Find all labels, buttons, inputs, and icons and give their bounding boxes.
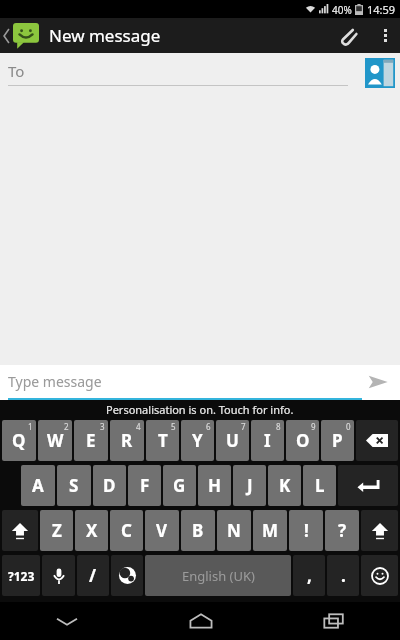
button[interactable]: N [217, 510, 251, 551]
button[interactable]: A [21, 465, 55, 506]
button[interactable]: U [216, 420, 249, 461]
staticText: N [227, 519, 241, 542]
button[interactable]: Home [134, 602, 267, 640]
button[interactable]: V [145, 510, 179, 551]
button[interactable]: To [8, 61, 348, 86]
staticText: 1 [28, 421, 33, 432]
staticText: J [247, 474, 253, 497]
button[interactable]: Z [40, 510, 73, 551]
button[interactable]: W [38, 420, 72, 461]
button[interactable]: Navigate up [0, 18, 43, 53]
button[interactable]: Shift [2, 510, 38, 551]
button[interactable]: D [93, 465, 126, 506]
button[interactable]: Enter [338, 465, 398, 506]
staticText: 8 [276, 421, 281, 432]
staticText: 9 [311, 421, 316, 432]
staticText: ? [338, 519, 347, 542]
button[interactable]: Slash [77, 555, 109, 596]
button[interactable]: More options [370, 18, 400, 53]
staticText: X [86, 519, 98, 542]
button[interactable]: Shift [361, 510, 398, 551]
button[interactable]: C [110, 510, 143, 551]
staticText: B [192, 519, 204, 542]
staticText: Y [192, 429, 203, 452]
button[interactable]: H [198, 465, 231, 506]
staticText: P [332, 429, 343, 452]
staticText: F [140, 474, 150, 497]
staticText: M [262, 519, 279, 542]
staticText: ! [304, 519, 309, 542]
staticText: A [32, 474, 44, 497]
button[interactable]: Voice input [42, 555, 75, 596]
staticText: 3 [100, 421, 105, 432]
button[interactable]: F [128, 465, 161, 506]
staticText: Personalisation is on. Touch for info. [106, 402, 294, 417]
staticText: 0 [346, 421, 351, 432]
staticText: 4 [136, 421, 141, 432]
button[interactable]: Emoji [361, 555, 398, 596]
button[interactable]: Hide keyboard [0, 602, 134, 640]
button[interactable]: Type message [8, 365, 356, 398]
staticText: W [47, 429, 64, 452]
staticText: T [158, 429, 168, 452]
button[interactable]: Attach [326, 18, 370, 53]
button[interactable]: Y [181, 420, 214, 461]
staticText: 2 [64, 421, 69, 432]
button[interactable]: Choose contact [364, 57, 396, 89]
staticText: To [8, 61, 25, 81]
button[interactable]: I [251, 420, 284, 461]
staticText: 14:59 [367, 2, 396, 17]
staticText: English (UK) [182, 567, 255, 585]
button[interactable]: Q [2, 420, 36, 461]
button[interactable]: M [253, 510, 287, 551]
button[interactable]: E [74, 420, 108, 461]
button[interactable]: T [146, 420, 179, 461]
button[interactable]: P [321, 420, 354, 461]
button[interactable]: Send [356, 365, 400, 398]
staticText: G [173, 474, 186, 497]
button[interactable]: Personalisation is on. Touch for info. [0, 400, 400, 418]
button[interactable]: K [268, 465, 301, 506]
staticText: V [156, 519, 168, 542]
button[interactable]: G [163, 465, 196, 506]
staticText: H [208, 474, 222, 497]
staticText: K [279, 474, 291, 497]
staticText: L [315, 474, 325, 497]
staticText: , [307, 564, 312, 587]
staticText: S [69, 474, 79, 497]
button[interactable]: B [181, 510, 215, 551]
staticText: / [89, 564, 97, 587]
button[interactable]: Comma [293, 555, 325, 596]
button[interactable]: English (UK) [145, 555, 291, 596]
staticText: Q [12, 429, 26, 452]
staticText: Z [52, 519, 62, 542]
staticText: Type message [8, 372, 102, 391]
staticText: ?123 [8, 568, 35, 584]
staticText: 7 [241, 421, 246, 432]
staticText: E [86, 429, 96, 452]
staticText: . [341, 564, 346, 587]
staticText: C [121, 519, 132, 542]
staticText: 5 [171, 421, 176, 432]
staticText: 40% [332, 3, 352, 17]
button[interactable]: Full stop [327, 555, 359, 596]
button[interactable]: L [303, 465, 336, 506]
button[interactable]: S [57, 465, 91, 506]
button[interactable]: J [233, 465, 266, 506]
staticText: R [121, 429, 133, 452]
staticText: 6 [206, 421, 211, 432]
button[interactable]: Delete [356, 420, 398, 461]
staticText: New message [49, 24, 161, 47]
staticText: O [296, 429, 310, 452]
button[interactable]: R [110, 420, 144, 461]
button[interactable]: Change language [111, 555, 143, 596]
staticText: I [264, 429, 271, 452]
staticText: U [226, 429, 239, 452]
button[interactable]: O [286, 420, 319, 461]
button[interactable]: Recent apps [267, 602, 400, 640]
button[interactable]: ? [325, 510, 359, 551]
button[interactable]: X [75, 510, 108, 551]
button[interactable]: Symbols [2, 555, 40, 596]
staticText: D [103, 474, 116, 497]
button[interactable]: ! [289, 510, 323, 551]
